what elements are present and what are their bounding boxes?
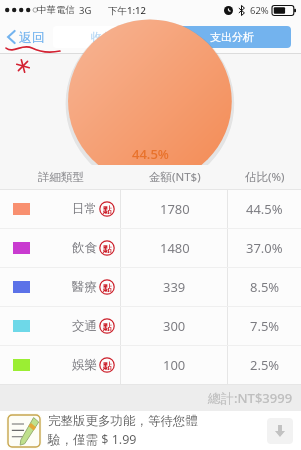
staticText: 完整版更多功能，等待您體: [48, 413, 198, 429]
staticText: 交通: [72, 318, 97, 334]
staticText: 支出分析: [210, 30, 254, 44]
staticText: 佔比(%): [245, 169, 285, 185]
staticText: 2.5%: [250, 356, 280, 374]
staticText: 3G: [79, 4, 92, 17]
button[interactable]: Download: [267, 418, 293, 444]
staticText: 點: [103, 321, 112, 332]
staticText: 7.5%: [250, 317, 280, 335]
staticText: 飲食: [72, 240, 97, 256]
staticText: 300: [163, 317, 186, 335]
staticText: 44.5%: [132, 145, 169, 163]
staticText: 驗，僅需 $ 1.99: [48, 431, 137, 448]
button[interactable]: 支出分析: [172, 26, 291, 48]
staticText: 下午1:12: [108, 4, 146, 17]
staticText: 詳細類型: [38, 170, 84, 184]
staticText: 8.5%: [250, 278, 280, 296]
staticText: 娛樂: [72, 357, 97, 373]
button[interactable]: 收入分析: [53, 26, 172, 48]
staticText: 44.5%: [246, 200, 283, 218]
button[interactable]: 日常: [0, 190, 301, 228]
staticText: 339: [163, 278, 186, 296]
button[interactable]: 返回: [4, 25, 48, 49]
staticText: 點: [103, 360, 112, 371]
staticText: 1480: [160, 239, 190, 257]
staticText: 金額(NT$): [149, 169, 201, 185]
staticText: 醫療: [72, 279, 97, 295]
staticText: 收入分析: [91, 30, 135, 44]
button[interactable]: 完整版更多功能，等待您體: [0, 411, 301, 450]
button[interactable]: 交通: [0, 307, 301, 345]
staticText: 點: [103, 243, 112, 254]
staticText: 62%: [250, 4, 269, 17]
staticText: 100: [163, 356, 186, 374]
staticText: 37.0%: [246, 239, 283, 257]
staticText: 1780: [160, 200, 190, 218]
staticText: 日常: [72, 201, 97, 217]
staticText: 返回: [19, 29, 45, 45]
staticText: 中華電信: [37, 4, 75, 16]
button[interactable]: 醫療: [0, 268, 301, 306]
staticText: 點: [103, 204, 112, 215]
button[interactable]: 飲食: [0, 229, 301, 267]
staticText: 總計:NT$3999: [208, 389, 293, 407]
staticText: 點: [103, 282, 112, 293]
button[interactable]: 娛樂: [0, 346, 301, 384]
